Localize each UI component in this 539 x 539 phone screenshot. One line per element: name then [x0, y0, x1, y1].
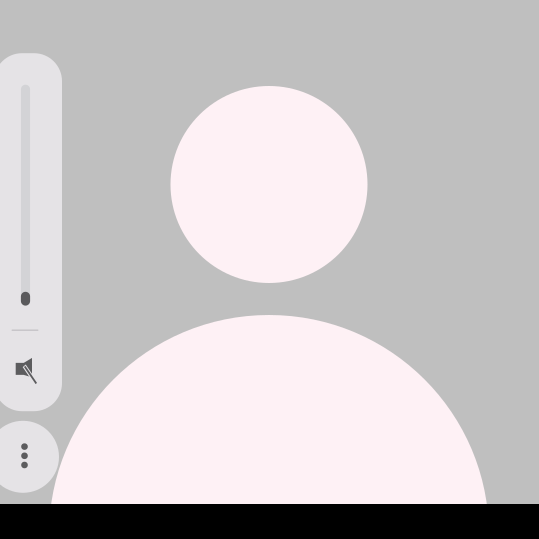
button[interactable]: More options: [0, 421, 59, 493]
button[interactable]: Volume: [0, 53, 62, 411]
